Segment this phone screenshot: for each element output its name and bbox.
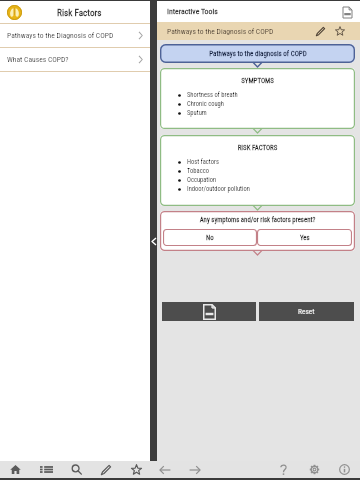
button[interactable]: Add to favourites [332, 23, 348, 39]
button[interactable]: Search [66, 461, 86, 478]
button[interactable]: Edit [312, 23, 328, 39]
staticText: Pathways to the diagnosis of COPD [209, 50, 307, 58]
staticText: Occupation [187, 176, 217, 184]
button[interactable]: Pathways to the diagnosis of COPD [160, 44, 355, 63]
staticText: What Causes COPD? [7, 55, 69, 64]
button[interactable]: Pathways to the Diagnosis of COPD [0, 24, 150, 47]
button[interactable]: Information [334, 461, 354, 478]
staticText: Risk Factors [57, 7, 102, 18]
button[interactable]: No [163, 229, 257, 246]
button[interactable]: RISK FACTORS [160, 135, 355, 206]
button[interactable]: Reset [259, 302, 354, 321]
button[interactable]: Any symptoms and/or risk factors present… [160, 211, 355, 251]
staticText: No [206, 234, 214, 242]
staticText: Pathways to the Diagnosis of COPD [167, 27, 274, 36]
staticText: Host factors [187, 158, 219, 166]
staticText: Any symptoms and/or risk factors present… [160, 216, 355, 224]
button[interactable]: Back [155, 461, 175, 478]
button[interactable]: What Causes COPD? [0, 48, 150, 71]
button[interactable]: Settings [304, 461, 324, 478]
staticText: RISK FACTORS [160, 144, 355, 152]
button[interactable]: Forward [185, 461, 205, 478]
button[interactable]: Annotate [96, 461, 116, 478]
staticText: Reset [298, 307, 315, 316]
staticText: Pathways to the Diagnosis of COPD [7, 31, 114, 40]
button[interactable]: Yes [257, 229, 352, 246]
button[interactable]: Bookmarks [126, 461, 146, 478]
staticText: Interactive Tools [167, 7, 218, 16]
button[interactable]: Open PDF [339, 4, 355, 20]
staticText: Indoor/outdoor pollution [187, 185, 250, 193]
button[interactable]: Collapse navigation panel [150, 1, 157, 461]
button[interactable]: Contents [36, 461, 56, 478]
staticText: Sputum [187, 109, 207, 117]
staticText: Yes [300, 234, 310, 242]
button[interactable]: SYMPTOMS [160, 68, 355, 129]
staticText: SYMPTOMS [160, 77, 355, 85]
button[interactable]: Home [5, 461, 25, 478]
button[interactable]: Save as PDF [162, 302, 256, 321]
button[interactable]: Help [273, 461, 293, 478]
staticText: Chronic cough [187, 100, 224, 108]
staticText: Shortness of breath [187, 91, 238, 99]
staticText: Tobacco [187, 167, 209, 175]
